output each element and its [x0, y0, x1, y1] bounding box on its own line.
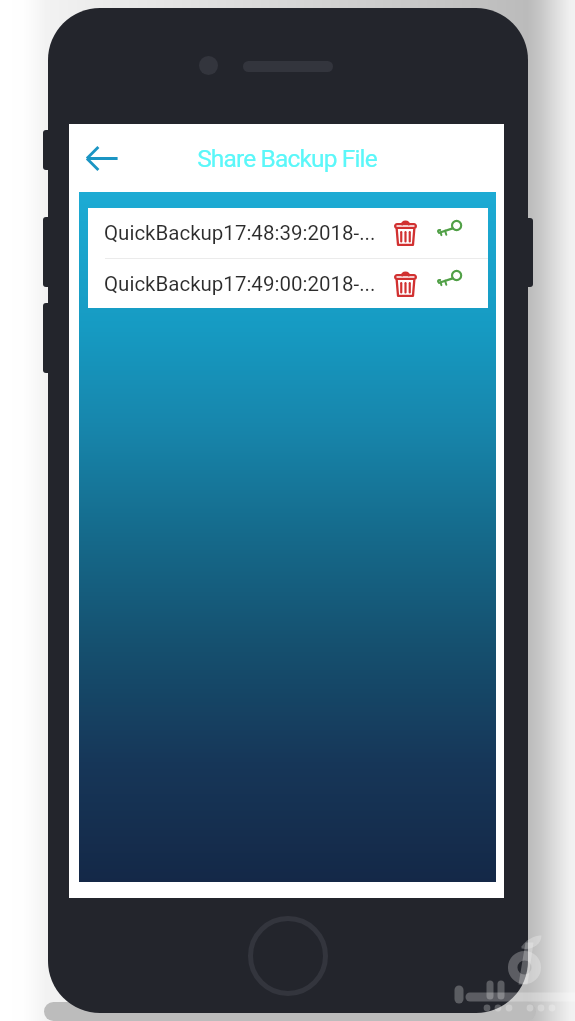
button[interactable]: Share backup [428, 259, 470, 308]
button[interactable]: Share backup [428, 208, 470, 258]
button[interactable]: Delete backup [384, 259, 426, 308]
staticText: QuickBackup17:48:39:2018-... [104, 221, 376, 245]
staticText: Share Backup File [197, 144, 377, 173]
button[interactable]: Delete backup [384, 208, 426, 258]
button[interactable]: QuickBackup17:48:39:2018-... [88, 208, 488, 258]
staticText: QuickBackup17:49:00:2018-... [104, 272, 376, 296]
button[interactable]: Back [78, 134, 126, 182]
button[interactable]: QuickBackup17:49:00:2018-... [88, 259, 488, 308]
